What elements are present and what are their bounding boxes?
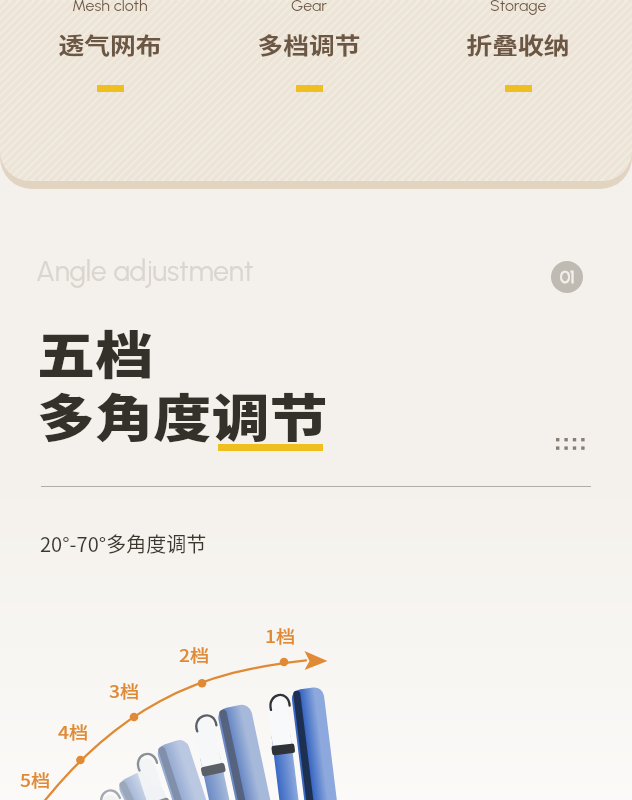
staticText: Gear [291, 0, 327, 15]
button[interactable]: Storage [428, 0, 608, 92]
staticText: 多档调节 [257, 27, 360, 60]
staticText: 2档 [179, 642, 209, 667]
staticText: 五档 [37, 315, 154, 389]
staticText: 1档 [265, 623, 295, 648]
staticText: 折叠收纳 [466, 27, 569, 60]
staticText: Mesh cloth [72, 0, 148, 15]
staticText: Storage [490, 0, 547, 15]
staticText: 5档 [20, 767, 50, 792]
staticText: 20°-70°多角度调节 [40, 529, 207, 558]
staticText: Angle adjustment [36, 254, 254, 288]
staticText: 01 [560, 267, 575, 287]
staticText: 4档 [58, 719, 88, 744]
button[interactable]: Section 01 [551, 261, 583, 293]
button[interactable]: Gear [219, 0, 399, 92]
staticText: 透气网布 [58, 27, 161, 60]
staticText: 多角度调节 [37, 378, 329, 452]
button[interactable]: Mesh cloth [20, 0, 200, 92]
staticText: 3档 [109, 678, 139, 703]
